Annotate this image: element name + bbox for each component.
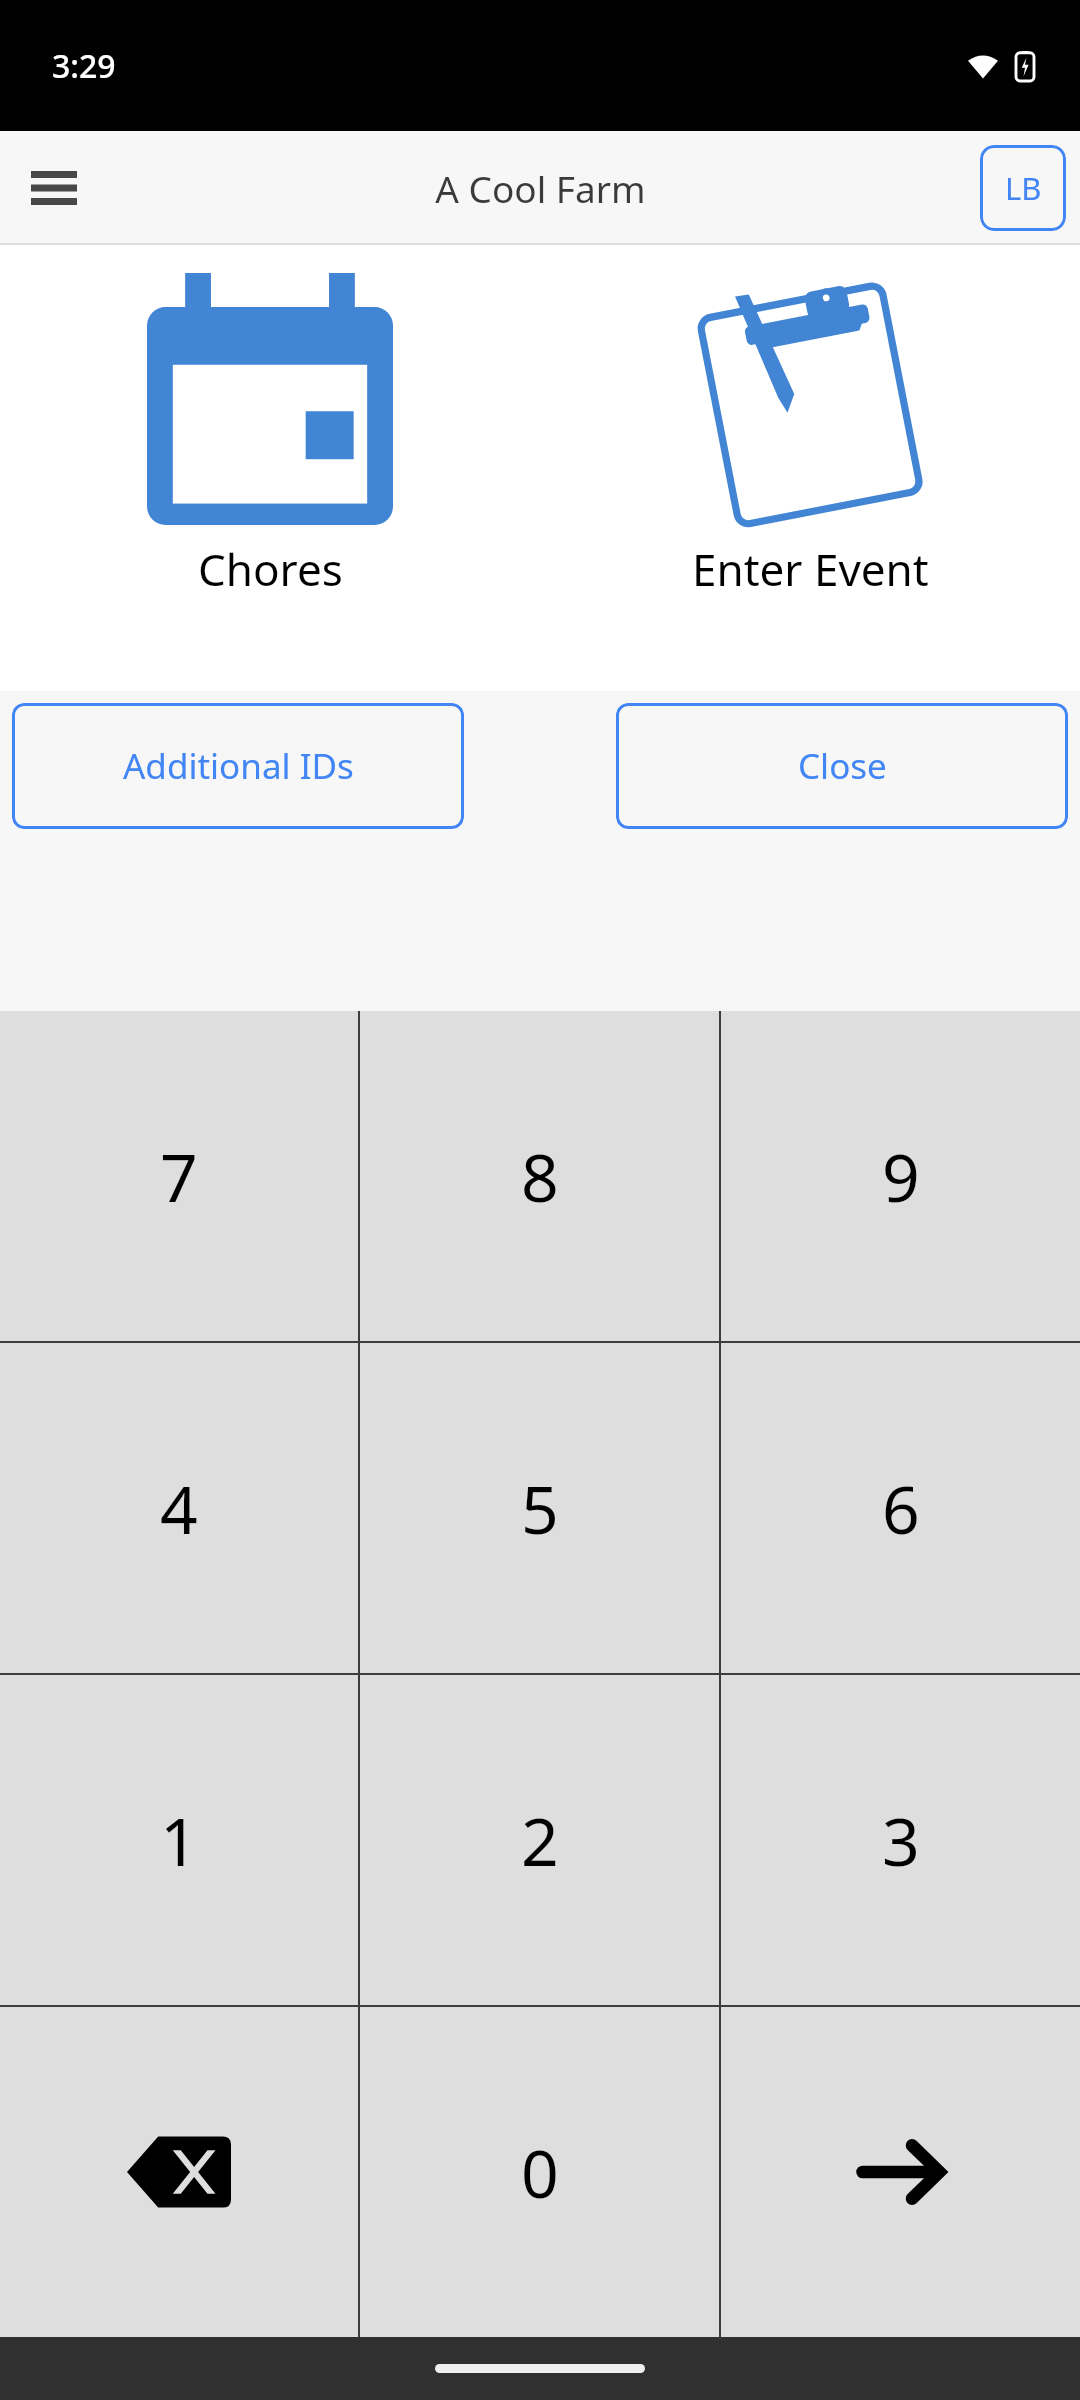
button[interactable]: Menu [10, 144, 98, 232]
button[interactable]: 5 [360, 1343, 719, 1673]
staticText: 3:29 [52, 44, 116, 88]
button[interactable]: Enter Event [540, 245, 1080, 691]
button[interactable]: 7 [0, 1011, 358, 1341]
button[interactable]: Additional IDs [12, 703, 464, 829]
button[interactable]: 6 [721, 1343, 1080, 1673]
button[interactable]: 3 [721, 1675, 1080, 2005]
button[interactable]: Submit [721, 2007, 1080, 2337]
staticText: Chores [198, 539, 343, 599]
staticText: 2 [521, 1795, 559, 1885]
button[interactable]: 1 [0, 1675, 358, 2005]
staticText: 0 [521, 2127, 559, 2217]
button[interactable]: 9 [721, 1011, 1080, 1341]
button[interactable]: 2 [360, 1675, 719, 2005]
button[interactable]: LB [980, 145, 1066, 231]
staticText: 7 [160, 1131, 198, 1221]
staticText: 9 [882, 1131, 920, 1221]
staticText: Enter Event [692, 539, 929, 599]
button[interactable]: Close [616, 703, 1068, 829]
button[interactable]: 8 [360, 1011, 719, 1341]
staticText: 8 [521, 1131, 559, 1221]
button[interactable]: Chores [0, 245, 540, 691]
staticText: 3 [882, 1795, 920, 1885]
button[interactable]: Backspace [0, 2007, 358, 2337]
button[interactable]: 0 [360, 2007, 719, 2337]
staticText: 5 [521, 1463, 559, 1553]
staticText: 6 [882, 1463, 920, 1553]
staticText: 1 [160, 1795, 198, 1885]
staticText: LB [1005, 167, 1042, 209]
staticText: 4 [160, 1463, 198, 1553]
button[interactable]: 4 [0, 1343, 358, 1673]
staticText: Additional IDs [123, 742, 354, 790]
staticText: A Cool Farm [435, 163, 646, 213]
staticText: Close [798, 742, 887, 790]
